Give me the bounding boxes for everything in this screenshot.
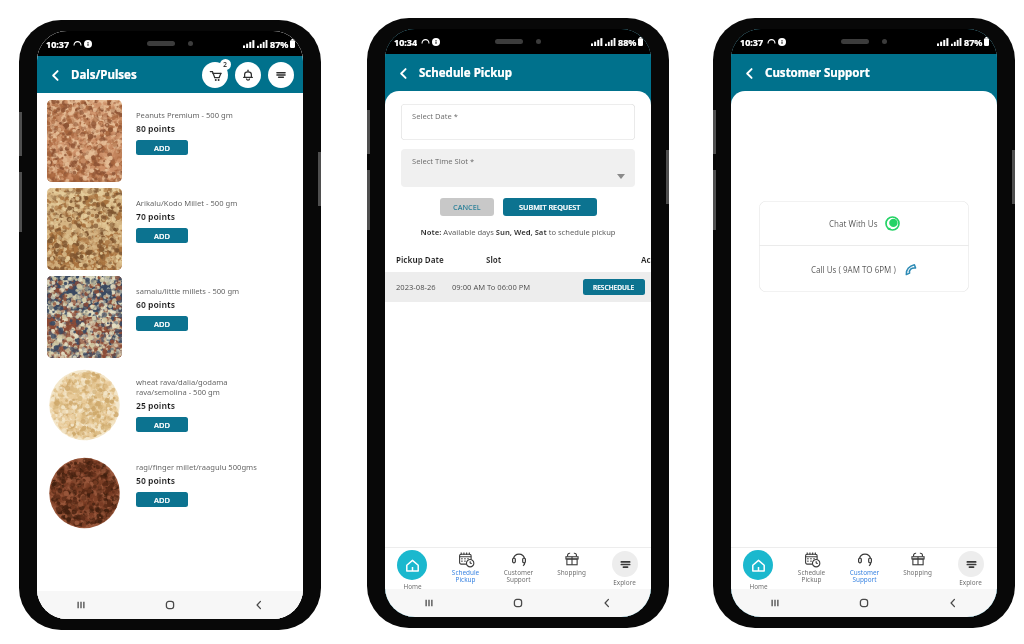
staticText: ADD xyxy=(154,495,170,505)
button[interactable]: ADD xyxy=(136,316,188,331)
button[interactable]: Home xyxy=(473,589,562,617)
staticText: ragi/finger millet/raagulu 500gms xyxy=(136,462,257,472)
button[interactable]: ragi/finger millet/raagulu 500gms xyxy=(37,449,303,537)
button[interactable]: Recents xyxy=(385,589,473,617)
staticText: Explore xyxy=(613,578,636,587)
staticText: 87% xyxy=(964,36,983,48)
button[interactable]: wheat rava/dalia/godama rava/semolina - … xyxy=(37,361,303,449)
button[interactable]: Recents xyxy=(731,589,819,617)
staticText: SUBMIT REQUEST xyxy=(519,202,581,212)
other: WhatsApp xyxy=(885,216,900,231)
button[interactable]: Explore xyxy=(598,547,651,589)
staticText: Explore xyxy=(959,578,982,587)
staticText: Ac xyxy=(641,254,651,265)
button[interactable]: Home xyxy=(125,591,214,619)
button[interactable]: Shopping xyxy=(891,547,944,589)
staticText: 2023-08-26 xyxy=(396,282,436,292)
staticText: 87% xyxy=(270,38,289,50)
staticText: Select Time Slot * xyxy=(412,156,475,166)
staticText: 10:37 xyxy=(740,36,764,48)
staticText: Schedule Pickup xyxy=(785,568,838,584)
button[interactable]: Home xyxy=(819,589,908,617)
staticText: ADD xyxy=(154,231,170,241)
button[interactable]: CANCEL xyxy=(440,198,494,216)
button[interactable]: Back xyxy=(738,62,760,84)
staticText: Customer Support xyxy=(838,568,891,584)
button[interactable]: ADD xyxy=(136,228,188,243)
button[interactable]: Home xyxy=(731,547,785,589)
button[interactable]: Chat With Us xyxy=(759,201,969,245)
staticText: Chat With Us xyxy=(829,218,878,229)
button[interactable]: Notifications xyxy=(235,62,261,88)
staticText: Shopping xyxy=(891,568,944,577)
other: Call xyxy=(903,262,918,277)
staticText: Select Date * xyxy=(412,111,459,121)
button[interactable]: Shopping xyxy=(545,547,598,589)
staticText: Arikalu/Kodo Millet - 500 gm xyxy=(136,198,238,208)
staticText: 09:00 AM To 06:00 PM xyxy=(452,282,531,292)
staticText: Slot xyxy=(486,254,502,265)
staticText: 50 points xyxy=(136,475,176,487)
staticText: Dals/Pulses xyxy=(71,67,137,83)
staticText: 70 points xyxy=(136,211,176,223)
button[interactable]: Peanuts Premium - 500 gm xyxy=(37,97,303,185)
staticText: RESCHEDULE xyxy=(593,283,635,292)
button[interactable]: Back xyxy=(214,591,303,619)
button[interactable]: Arikalu/Kodo Millet - 500 gm xyxy=(37,185,303,273)
button[interactable]: Customer Support xyxy=(492,547,545,589)
staticText: Home xyxy=(403,582,422,589)
staticText: 80 points xyxy=(136,123,176,135)
button[interactable]: Back xyxy=(392,62,414,84)
button[interactable]: Menu xyxy=(268,62,294,88)
staticText: Schedule Pickup xyxy=(439,568,492,584)
staticText: 25 points xyxy=(136,400,176,412)
staticText: wheat rava/dalia/godama rava/semolina - … xyxy=(136,377,228,397)
staticText: 2 xyxy=(223,60,228,70)
button[interactable]: ADD xyxy=(136,492,188,507)
button[interactable]: Schedule Pickup xyxy=(439,547,492,589)
button[interactable]: Customer Support xyxy=(838,547,891,589)
staticText: Call Us ( 9AM TO 6PM ) xyxy=(811,264,896,275)
staticText: Note: Available days Sun, Wed, Sat to sc… xyxy=(385,227,651,237)
button[interactable]: Explore xyxy=(944,547,997,589)
staticText: Customer Support xyxy=(492,568,545,584)
staticText: Home xyxy=(749,582,768,589)
button[interactable]: SUBMIT REQUEST xyxy=(503,198,597,216)
staticText: samalu/little millets - 500 gm xyxy=(136,286,240,296)
button[interactable]: Back xyxy=(44,64,66,86)
button[interactable]: RESCHEDULE xyxy=(583,279,645,295)
staticText: Pickup Date xyxy=(396,254,444,265)
button[interactable]: ADD xyxy=(136,417,188,432)
button[interactable]: samalu/little millets - 500 gm xyxy=(37,273,303,361)
staticText: 88% xyxy=(618,36,637,48)
button[interactable]: Select Date * xyxy=(401,104,635,140)
button[interactable]: Home xyxy=(385,547,439,589)
staticText: 60 points xyxy=(136,299,176,311)
staticText: Peanuts Premium - 500 gm xyxy=(136,110,233,120)
staticText: ADD xyxy=(154,420,170,430)
button[interactable]: Cart xyxy=(202,62,228,88)
staticText: 10:34 xyxy=(394,36,418,48)
button[interactable]: Back xyxy=(908,589,997,617)
staticText: CANCEL xyxy=(453,202,481,212)
button[interactable]: Call Us ( 9AM TO 6PM ) xyxy=(759,246,969,292)
staticText: ADD xyxy=(154,319,170,329)
button[interactable]: Select Time Slot * xyxy=(401,149,635,187)
button[interactable]: ADD xyxy=(136,140,188,155)
button[interactable]: Schedule Pickup xyxy=(785,547,838,589)
staticText: Shopping xyxy=(545,568,598,577)
staticText: Customer Support xyxy=(765,65,870,81)
button[interactable]: Recents xyxy=(37,591,125,619)
button[interactable]: Back xyxy=(562,589,651,617)
staticText: ADD xyxy=(154,143,170,153)
staticText: 10:37 xyxy=(46,38,70,50)
staticText: Schedule Pickup xyxy=(419,65,513,81)
